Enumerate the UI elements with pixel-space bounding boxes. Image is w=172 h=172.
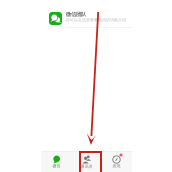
staticText: 微信团队: [66, 11, 86, 18]
staticText: 发现: [112, 163, 120, 168]
staticText: 你可以在这里查看微信的功能介绍: [66, 18, 126, 22]
button[interactable]: 微信: [41, 153, 71, 170]
button[interactable]: 发现: [101, 153, 131, 170]
button[interactable]: 通讯录: [71, 153, 101, 170]
button[interactable]: 微信团队: [41, 9, 132, 27]
staticText: 微信: [52, 163, 60, 168]
staticText: 通讯录: [80, 164, 92, 169]
